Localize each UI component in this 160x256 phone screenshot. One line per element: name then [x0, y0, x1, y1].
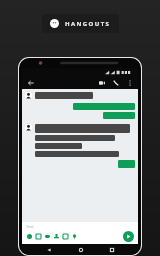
button[interactable]: [35, 135, 115, 141]
button[interactable]: [35, 143, 82, 149]
button[interactable]: Send: [123, 231, 134, 242]
button[interactable]: Emoji: [26, 233, 33, 240]
staticText: HANGOUTS: [65, 20, 111, 28]
button[interactable]: Photo: [35, 233, 42, 240]
staticText: Text: [26, 224, 34, 229]
button[interactable]: [35, 124, 130, 133]
button[interactable]: [35, 92, 93, 99]
button[interactable]: Sticker: [44, 233, 51, 240]
button[interactable]: Video: [53, 233, 60, 240]
button[interactable]: [35, 151, 119, 157]
button[interactable]: Location: [71, 233, 78, 240]
button[interactable]: Call: [111, 78, 120, 87]
button[interactable]: Back: [26, 78, 35, 87]
button[interactable]: Home: [76, 245, 85, 254]
button[interactable]: Recents: [107, 245, 116, 254]
button[interactable]: Back: [44, 245, 53, 254]
button[interactable]: More options: [125, 78, 134, 87]
button[interactable]: Video call: [97, 78, 106, 87]
button[interactable]: [118, 160, 135, 168]
button[interactable]: [73, 103, 135, 110]
button[interactable]: HANGOUTS: [42, 14, 119, 33]
button[interactable]: [103, 112, 135, 119]
button[interactable]: Camera: [62, 233, 69, 240]
